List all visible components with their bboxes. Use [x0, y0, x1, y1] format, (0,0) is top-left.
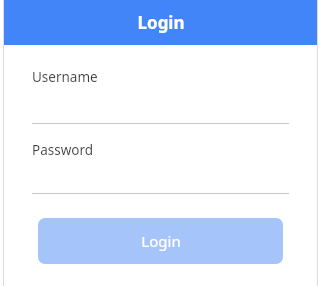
button[interactable]: Login: [4, 0, 317, 45]
button[interactable]: Password: [32, 138, 289, 162]
staticText: Login: [141, 231, 181, 251]
staticText: Username: [32, 68, 98, 86]
staticText: Login: [137, 11, 185, 34]
button[interactable]: Login: [38, 218, 283, 264]
staticText: Password: [32, 141, 94, 159]
button[interactable]: Username: [32, 65, 289, 89]
